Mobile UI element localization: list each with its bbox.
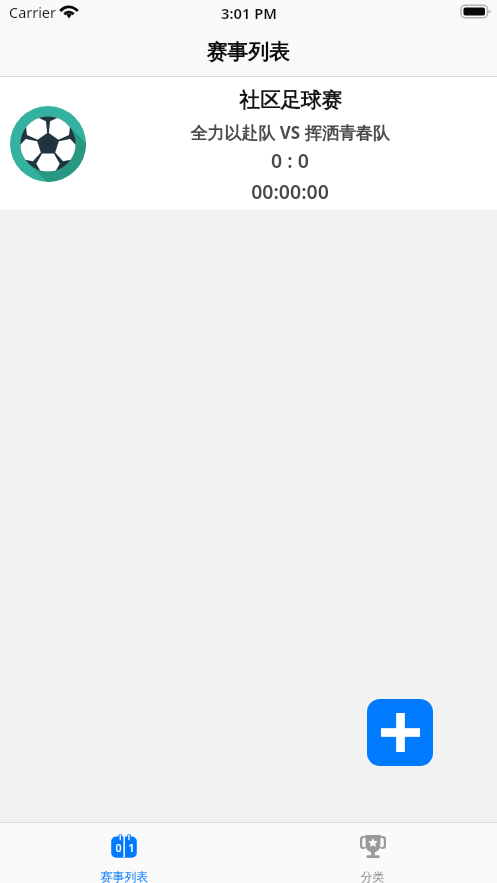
staticText: 赛事列表 — [206, 39, 290, 65]
button[interactable]: 社区足球赛 — [0, 77, 497, 210]
button[interactable]: 分类 — [248, 823, 497, 883]
button[interactable]: Add match — [367, 699, 433, 766]
staticText: 赛事列表 — [100, 869, 149, 883]
staticText: 分类 — [360, 869, 385, 883]
staticText: Carrier — [9, 3, 56, 23]
staticText: 3:01 PM — [221, 3, 277, 23]
staticText: 00:00:00 — [251, 178, 329, 205]
staticText: 0 : 0 — [271, 147, 309, 174]
staticText: 0 — [115, 841, 122, 855]
staticText: 社区足球赛 — [239, 87, 342, 113]
staticText: 全力以赴队 VS 挥洒青春队 — [190, 121, 390, 144]
staticText: 1 — [128, 841, 135, 855]
button[interactable]: 0 — [0, 823, 248, 883]
